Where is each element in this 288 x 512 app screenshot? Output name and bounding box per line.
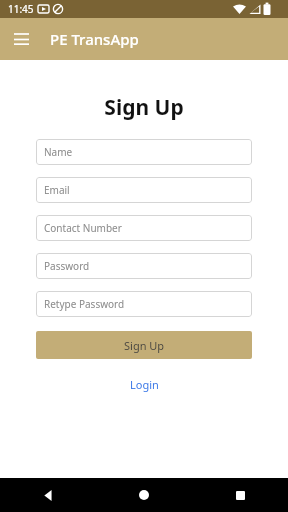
- button[interactable]: Retype Password: [36, 291, 252, 317]
- staticText: Name: [44, 145, 73, 159]
- staticText: Contact Number: [44, 221, 122, 235]
- staticText: Retype Password: [44, 297, 125, 311]
- button[interactable]: Open navigation menu: [8, 26, 34, 52]
- staticText: Password: [44, 259, 90, 273]
- button[interactable]: Name: [36, 139, 252, 165]
- button[interactable]: Recent apps: [192, 478, 288, 512]
- staticText: 11:45: [8, 2, 34, 16]
- button[interactable]: Password: [36, 253, 252, 279]
- button[interactable]: Contact Number: [36, 215, 252, 241]
- button[interactable]: Email: [36, 177, 252, 203]
- button[interactable]: Sign Up: [36, 331, 252, 359]
- button[interactable]: Home: [96, 478, 192, 512]
- staticText: Sign Up: [124, 338, 165, 353]
- staticText: PE TransApp: [50, 29, 139, 49]
- button[interactable]: Login: [122, 375, 167, 394]
- staticText: Email: [44, 183, 70, 197]
- button[interactable]: Back: [0, 478, 96, 512]
- staticText: Sign Up: [0, 93, 288, 122]
